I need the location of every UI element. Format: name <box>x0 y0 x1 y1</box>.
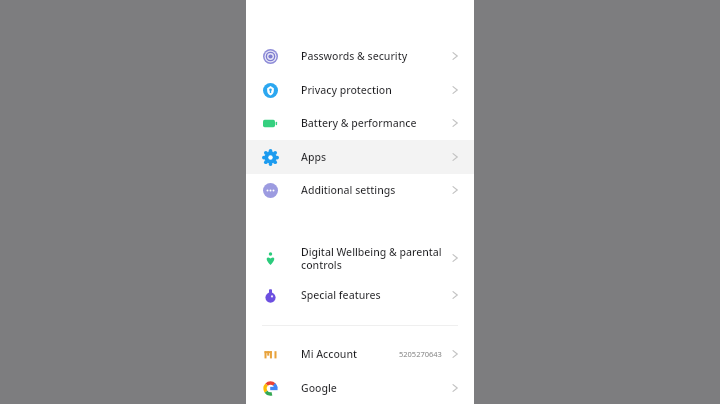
button[interactable]: Additional settings <box>246 173 474 207</box>
button[interactable]: Passwords & security <box>246 39 474 73</box>
button[interactable]: Special features <box>246 278 474 312</box>
staticText: Additional settings <box>301 183 448 197</box>
button[interactable]: Apps <box>246 140 474 174</box>
staticText: Passwords & security <box>301 49 448 63</box>
button[interactable]: Battery & performance <box>246 106 474 140</box>
staticText: Mi Account <box>301 347 399 361</box>
staticText: Apps <box>301 150 448 164</box>
staticText: 5205270643 <box>399 349 442 359</box>
staticText: Special features <box>301 288 448 302</box>
staticText: Privacy protection <box>301 83 448 97</box>
button[interactable]: Mi Account <box>246 337 474 371</box>
staticText: Digital Wellbeing & parental controls <box>301 245 448 272</box>
button[interactable]: Digital Wellbeing & parental controls <box>246 238 474 278</box>
staticText: Google <box>301 381 448 395</box>
staticText: Battery & performance <box>301 116 448 130</box>
button[interactable]: Privacy protection <box>246 73 474 107</box>
button[interactable]: Google <box>246 371 474 404</box>
